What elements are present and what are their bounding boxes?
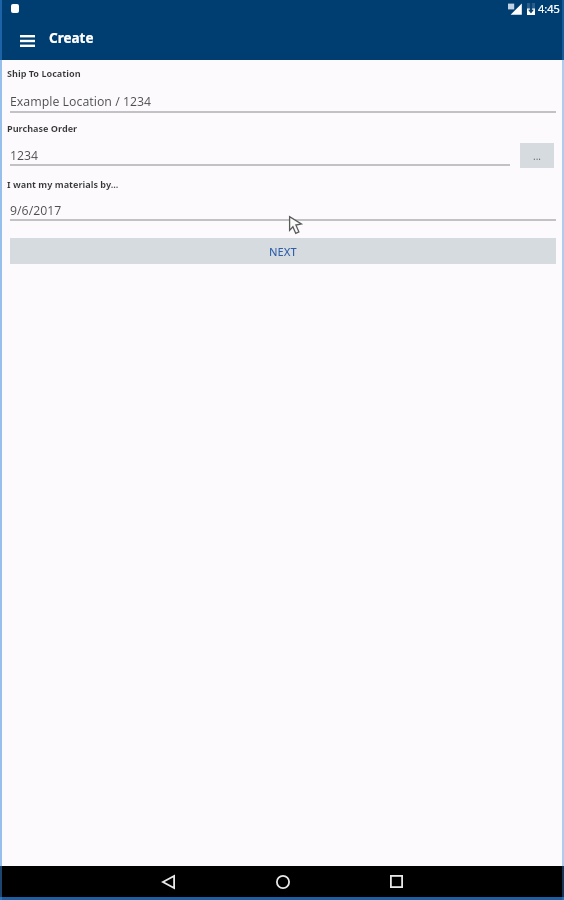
staticText: 1234 (10, 147, 39, 164)
staticText: NEXT (269, 244, 297, 259)
button[interactable]: Recent apps (377, 866, 417, 897)
button[interactable]: Open navigation menu (8, 25, 46, 57)
staticText: Ship To Location (7, 67, 81, 79)
staticText: Purchase Order (7, 122, 78, 134)
button[interactable]: NEXT (10, 238, 556, 264)
staticText: 4:45 (538, 1, 560, 16)
button[interactable]: Purchase Order (7, 119, 510, 171)
button[interactable]: Home (263, 866, 303, 897)
staticText: ... (533, 149, 542, 163)
staticText: I want my materials by... (7, 178, 119, 190)
staticText: 9/6/2017 (10, 202, 62, 219)
button[interactable]: I want my materials by... (7, 174, 556, 226)
button[interactable]: Back (149, 866, 189, 897)
staticText: Create (49, 29, 94, 47)
staticText: Example Location / 1234 (10, 93, 152, 110)
button[interactable]: Ship To Location (7, 64, 556, 118)
button[interactable]: More options (520, 143, 554, 168)
